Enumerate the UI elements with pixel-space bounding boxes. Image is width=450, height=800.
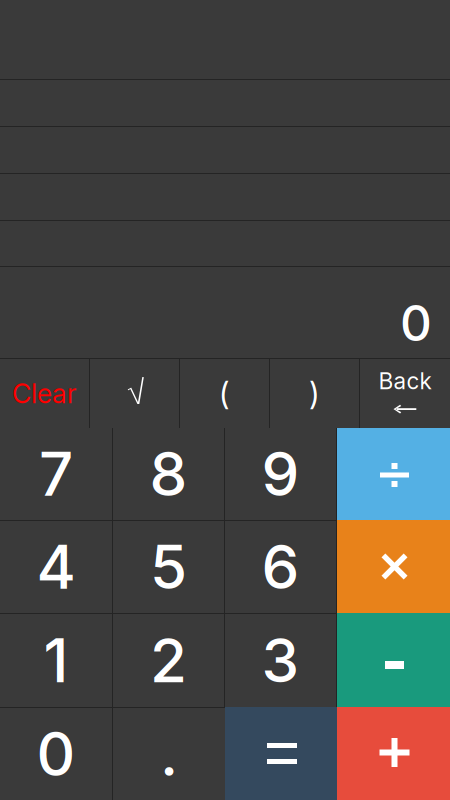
staticText: 0	[400, 293, 432, 353]
staticText: 5	[150, 531, 187, 603]
staticText: 7	[39, 438, 73, 510]
button[interactable]: Clear	[0, 359, 89, 428]
button[interactable]: 6	[225, 521, 336, 613]
button[interactable]: Multiply	[337, 520, 450, 613]
button[interactable]: 8	[113, 428, 224, 520]
staticText: 6	[261, 531, 299, 603]
button[interactable]: 3	[225, 614, 336, 707]
button[interactable]: .	[113, 708, 225, 800]
button[interactable]: Divide	[337, 428, 450, 520]
staticText: 9	[261, 438, 299, 510]
staticText: 1	[43, 624, 68, 697]
button[interactable]: Subtract	[337, 613, 450, 707]
button[interactable]: Equals	[225, 707, 337, 800]
staticText: Back	[378, 367, 431, 395]
staticText: 8	[149, 438, 187, 510]
button[interactable]: (	[180, 359, 269, 428]
staticText: )	[309, 374, 320, 413]
button[interactable]: Add	[337, 707, 450, 800]
button[interactable]: 7	[0, 428, 112, 520]
staticText: Clear	[12, 377, 77, 410]
button[interactable]: 4	[0, 521, 112, 613]
staticText: .	[160, 718, 178, 790]
button[interactable]: 9	[225, 428, 336, 520]
button[interactable]: Square root	[90, 359, 179, 428]
button[interactable]: )	[270, 359, 359, 428]
button[interactable]: Back	[360, 359, 450, 428]
button[interactable]: 5	[113, 521, 224, 613]
button[interactable]: 1	[0, 614, 112, 707]
staticText: (	[219, 374, 230, 413]
staticText: 4	[36, 531, 75, 603]
button[interactable]: 0	[0, 708, 112, 800]
button[interactable]: 2	[113, 614, 224, 707]
staticText: 0	[36, 718, 75, 790]
staticText: 2	[150, 624, 187, 697]
staticText: 3	[261, 624, 299, 697]
